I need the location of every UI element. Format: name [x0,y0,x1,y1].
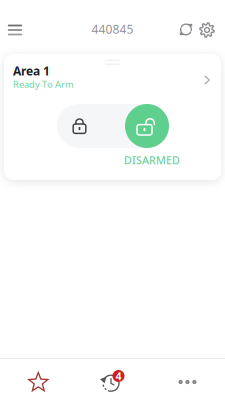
staticText: Ready To Arm [13,78,74,90]
staticText: 440845 [91,21,133,37]
staticText: 4 [115,369,121,383]
staticText: DISARMED [124,153,180,167]
button[interactable]: Refresh [172,0,194,54]
button[interactable]: Favorites [0,359,75,400]
staticText: Area 1 [13,63,50,79]
button[interactable]: Settings [194,0,220,54]
button[interactable]: History [75,359,150,400]
button[interactable]: Menu [0,0,30,54]
button[interactable]: More [150,359,225,400]
button[interactable]: Area 1 [4,54,221,180]
